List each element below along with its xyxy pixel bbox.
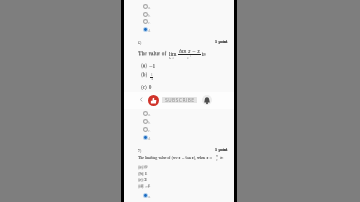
staticText: 4	[151, 76, 153, 81]
button[interactable]: b.	[143, 119, 151, 124]
staticText: The value of	[138, 49, 166, 56]
staticText: 0	[149, 84, 152, 91]
staticText: (c) 2	[138, 176, 147, 182]
staticText: (c) 2	[139, 176, 148, 182]
button[interactable]: c.	[143, 127, 151, 132]
staticText: (c)	[141, 84, 147, 91]
staticText: x	[187, 56, 189, 60]
staticText: lim	[169, 50, 177, 58]
button[interactable]: a.	[143, 111, 151, 116]
button[interactable]: a.	[143, 193, 151, 198]
staticText: (d) −1	[138, 183, 150, 189]
staticText: is	[220, 155, 223, 160]
staticText: a.	[148, 112, 151, 117]
staticText: 1 point	[215, 147, 228, 152]
staticText: is	[220, 155, 223, 160]
staticText: c.	[148, 128, 151, 133]
staticText: (b)	[141, 71, 148, 78]
staticText: (c)	[141, 84, 147, 91]
staticText: 1	[151, 72, 153, 77]
staticText: tan x − x	[179, 47, 200, 54]
staticText: (c) 2	[138, 176, 147, 182]
staticText: b.	[148, 13, 151, 18]
staticText: x→0	[169, 56, 174, 59]
staticText: The value of	[138, 50, 166, 57]
staticText: is	[202, 50, 206, 57]
staticText: (a) 0	[138, 164, 147, 170]
staticText: d.	[148, 28, 151, 33]
staticText: (b)	[141, 72, 148, 79]
button[interactable]: Back	[139, 97, 144, 102]
staticText: c.	[148, 20, 151, 25]
staticText: SUBSCRIBE	[165, 98, 195, 103]
staticText: (a) 0	[139, 163, 148, 169]
staticText: (c)	[141, 84, 147, 91]
staticText: tan x − x	[179, 47, 200, 54]
staticText: 1 point	[215, 147, 228, 152]
staticText: The value of	[138, 49, 166, 56]
staticText: −1	[149, 63, 155, 70]
staticText: (a)	[141, 63, 147, 70]
staticText: a.	[148, 5, 151, 10]
staticText: 6)	[138, 39, 142, 45]
staticText: is	[202, 50, 206, 57]
staticText: 1 point	[215, 147, 228, 152]
staticText: d.	[148, 136, 151, 141]
staticText: (a) 0	[138, 163, 147, 169]
staticText: is	[221, 155, 224, 160]
staticText: The limiting value of (sec x − tan x), w…	[138, 155, 213, 160]
button[interactable]: Channel avatar	[148, 95, 159, 106]
staticText: (b) 1	[139, 170, 148, 176]
staticText: The limiting value of (sec x − tan x), w…	[138, 155, 213, 160]
button[interactable]: c.	[143, 19, 151, 24]
button[interactable]: b.	[143, 12, 151, 17]
staticText: (b)	[141, 71, 148, 78]
staticText: π	[216, 154, 218, 158]
staticText: (b) 1	[138, 170, 147, 176]
staticText: (d) −1	[139, 182, 151, 188]
button[interactable]: a.	[143, 4, 151, 9]
staticText: a.	[148, 194, 151, 199]
staticText: b.	[148, 120, 151, 125]
staticText: 3	[190, 54, 192, 57]
button[interactable]: d.	[143, 135, 151, 140]
staticText: 7)	[138, 147, 142, 153]
staticText: lim	[169, 50, 177, 58]
staticText: 7)	[138, 147, 142, 153]
button[interactable]: Notifications	[202, 95, 212, 105]
button[interactable]: d.	[143, 27, 151, 32]
staticText: (b) 1	[138, 170, 147, 176]
staticText: −1	[149, 63, 155, 70]
staticText: 2	[216, 158, 218, 162]
button[interactable]: SUBSCRIBE	[162, 97, 197, 103]
staticText: lim	[169, 50, 177, 58]
staticText: 1 point	[215, 39, 228, 44]
staticText: −1	[149, 63, 155, 70]
staticText: (a)	[141, 62, 147, 69]
staticText: The limiting value of (sec x − tan x), w…	[138, 155, 213, 160]
staticText: 1 point	[215, 39, 228, 44]
staticText: 0	[149, 84, 152, 91]
staticText: 1 point	[215, 39, 228, 44]
staticText: 6)	[138, 39, 142, 45]
staticText: (a)	[141, 62, 147, 69]
staticText: (d) −1	[138, 182, 150, 188]
staticText: tan x − x	[179, 47, 200, 54]
staticText: is	[202, 50, 206, 57]
staticText: 0	[149, 84, 152, 91]
